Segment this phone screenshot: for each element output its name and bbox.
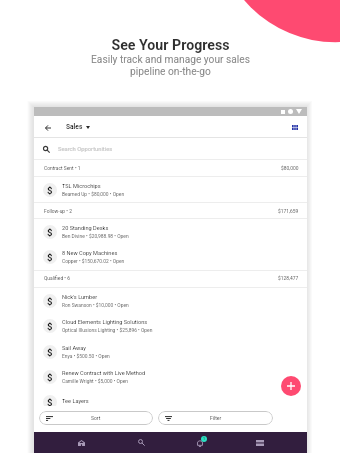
staticText: $ — [47, 321, 53, 332]
button[interactable]: Search Opportunities — [34, 139, 307, 159]
staticText: $80,000 — [281, 165, 299, 171]
staticText: $ — [47, 296, 53, 307]
staticText: 8 New Copy Machines — [62, 250, 118, 257]
staticText: 1 — [203, 437, 206, 441]
button[interactable]: $ — [34, 389, 307, 414]
staticText: $ — [47, 372, 53, 383]
staticText: Contract Sent • 1 — [44, 165, 81, 171]
staticText: Ron Swanson • $10,000 • Open — [62, 302, 129, 308]
button[interactable]: $ — [34, 219, 307, 244]
staticText: Copper • $150,670.02 • Open — [62, 258, 125, 264]
staticText: $128,477 — [278, 275, 299, 281]
staticText: Follow-up • 2 — [44, 208, 72, 214]
staticText: Camille Wright • $5,000 • Open — [62, 378, 128, 384]
button[interactable]: $ — [34, 339, 307, 364]
staticText: Sort — [91, 415, 101, 421]
staticText: TSL Microchips — [62, 183, 101, 190]
button[interactable]: Add opportunity — [281, 376, 301, 396]
staticText: Nick's Lumber — [62, 294, 98, 301]
staticText: Beamed Up • $80,000 • Open — [62, 191, 125, 197]
staticText: $ — [47, 185, 53, 196]
staticText: $ — [47, 252, 53, 263]
staticText: 20 Standing Desks — [62, 225, 109, 232]
staticText: Qualified • 6 — [44, 275, 70, 281]
button[interactable]: $ — [34, 288, 307, 313]
staticText: $ — [47, 227, 53, 238]
button[interactable]: Menu — [246, 432, 274, 453]
staticText: Cloud Elements Lighting Solutions — [62, 319, 148, 326]
button[interactable]: Search — [127, 432, 155, 453]
button[interactable]: Sort — [39, 411, 153, 425]
staticText: Renew Contract with Live Method — [62, 370, 146, 377]
button[interactable]: $ — [34, 313, 307, 338]
button[interactable]: Sales — [66, 123, 90, 131]
button[interactable]: $ — [34, 364, 307, 389]
staticText: Sail Away — [62, 345, 86, 352]
staticText: Sales — [66, 123, 83, 131]
staticText: Filter — [210, 415, 222, 421]
staticText: See Your Progress — [111, 37, 230, 54]
staticText: Tee Layers — [62, 398, 89, 405]
staticText: Optical Illusions Lighting • $25,896 • O… — [62, 327, 153, 333]
button[interactable]: $ — [34, 177, 307, 202]
button[interactable]: Filter — [158, 411, 273, 425]
staticText: Search Opportunities — [58, 146, 113, 153]
staticText: $ — [47, 397, 53, 408]
button[interactable]: Home — [67, 432, 95, 453]
button[interactable]: Notifications — [186, 432, 214, 453]
staticText: Enya • $500.50 • Open — [62, 353, 110, 359]
staticText: $171,659 — [278, 208, 299, 214]
button[interactable]: $ — [34, 244, 307, 269]
button[interactable]: Switch view — [288, 121, 301, 134]
staticText: $ — [47, 347, 53, 358]
staticText: Easily track and manage your sales pipel… — [91, 54, 250, 78]
button[interactable]: Back — [41, 121, 54, 134]
staticText: Ben Divine • $20,988.98 • Open — [62, 233, 129, 239]
